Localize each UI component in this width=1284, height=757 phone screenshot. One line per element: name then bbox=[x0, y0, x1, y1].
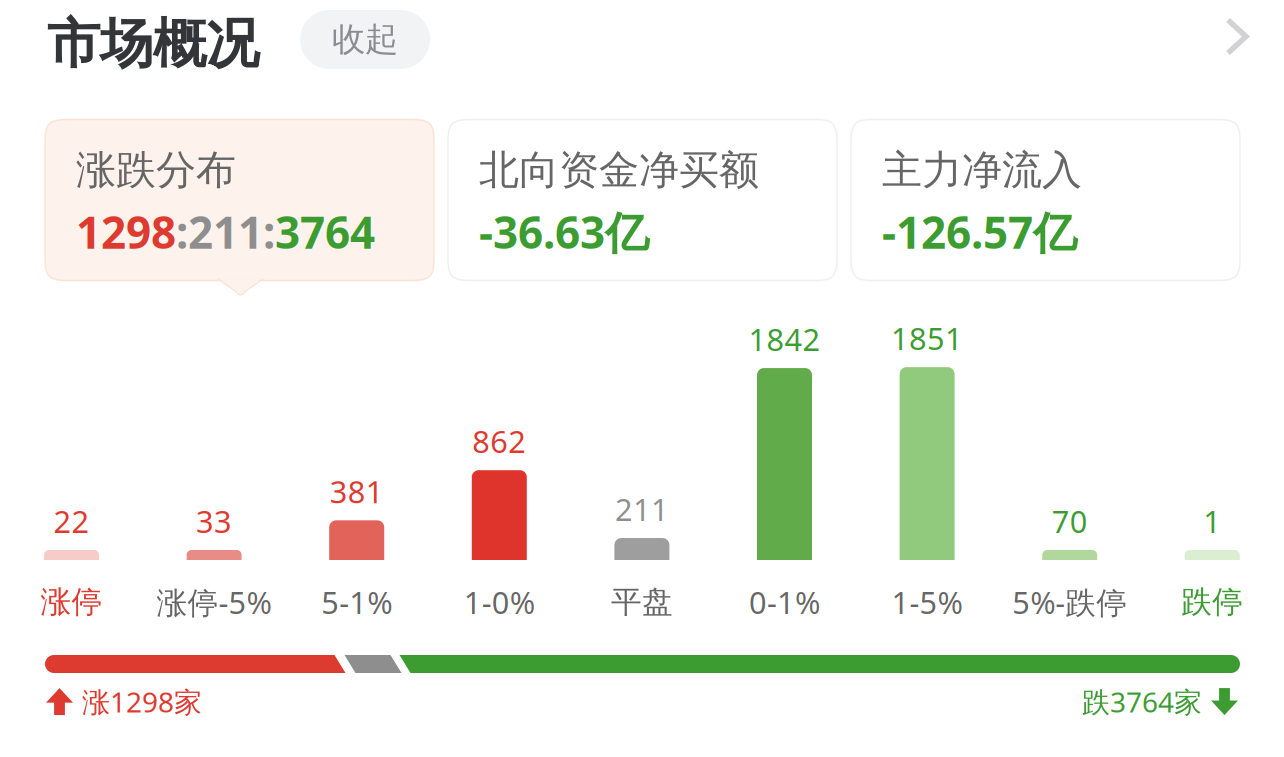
staticText: 平盘 bbox=[611, 583, 673, 621]
staticText: 跌停 bbox=[1181, 583, 1243, 621]
staticText: 70 bbox=[1052, 501, 1088, 541]
staticText: : bbox=[176, 202, 188, 261]
staticText: 1851 bbox=[891, 318, 963, 358]
staticText: 3764 bbox=[275, 202, 375, 261]
staticText: 主力净流入 bbox=[882, 145, 1082, 195]
button[interactable]: Expand bbox=[1210, 2, 1264, 71]
staticText: 涨停 bbox=[40, 583, 102, 621]
staticText: : bbox=[263, 202, 275, 261]
button[interactable]: 市场概况 bbox=[47, 14, 263, 74]
staticText: 211 bbox=[188, 202, 263, 261]
staticText: 1842 bbox=[748, 319, 820, 359]
staticText: 1-5% bbox=[892, 582, 963, 622]
staticText: 381 bbox=[330, 471, 384, 512]
button[interactable]: 主力净流入 bbox=[851, 119, 1240, 280]
staticText: 市场概况 bbox=[47, 11, 259, 77]
staticText: 5%-跌停 bbox=[1012, 582, 1127, 622]
staticText: 涨停-5% bbox=[157, 582, 272, 622]
staticText: 涨跌分布 bbox=[76, 145, 236, 195]
staticText: 北向资金净买额 bbox=[479, 145, 759, 195]
staticText: 1 bbox=[1203, 501, 1221, 541]
staticText: 862 bbox=[472, 421, 526, 461]
button[interactable]: 收起 bbox=[300, 10, 430, 69]
button[interactable]: 涨跌分布 bbox=[45, 119, 434, 280]
staticText: 跌3764家 bbox=[1082, 683, 1202, 720]
staticText: 收起 bbox=[332, 19, 398, 60]
staticText: 5-1% bbox=[321, 582, 392, 622]
button[interactable]: 北向资金净买额 bbox=[448, 119, 837, 280]
staticText: 22 bbox=[53, 501, 89, 541]
staticText: 1-0% bbox=[464, 582, 535, 622]
staticText: -126.57亿 bbox=[882, 202, 1077, 261]
staticText: 涨1298家 bbox=[82, 683, 202, 720]
staticText: 211 bbox=[615, 489, 669, 529]
staticText: -36.63亿 bbox=[479, 202, 649, 261]
staticText: 1298 bbox=[76, 202, 176, 261]
staticText: 33 bbox=[196, 501, 232, 541]
staticText: 0-1% bbox=[749, 582, 820, 622]
